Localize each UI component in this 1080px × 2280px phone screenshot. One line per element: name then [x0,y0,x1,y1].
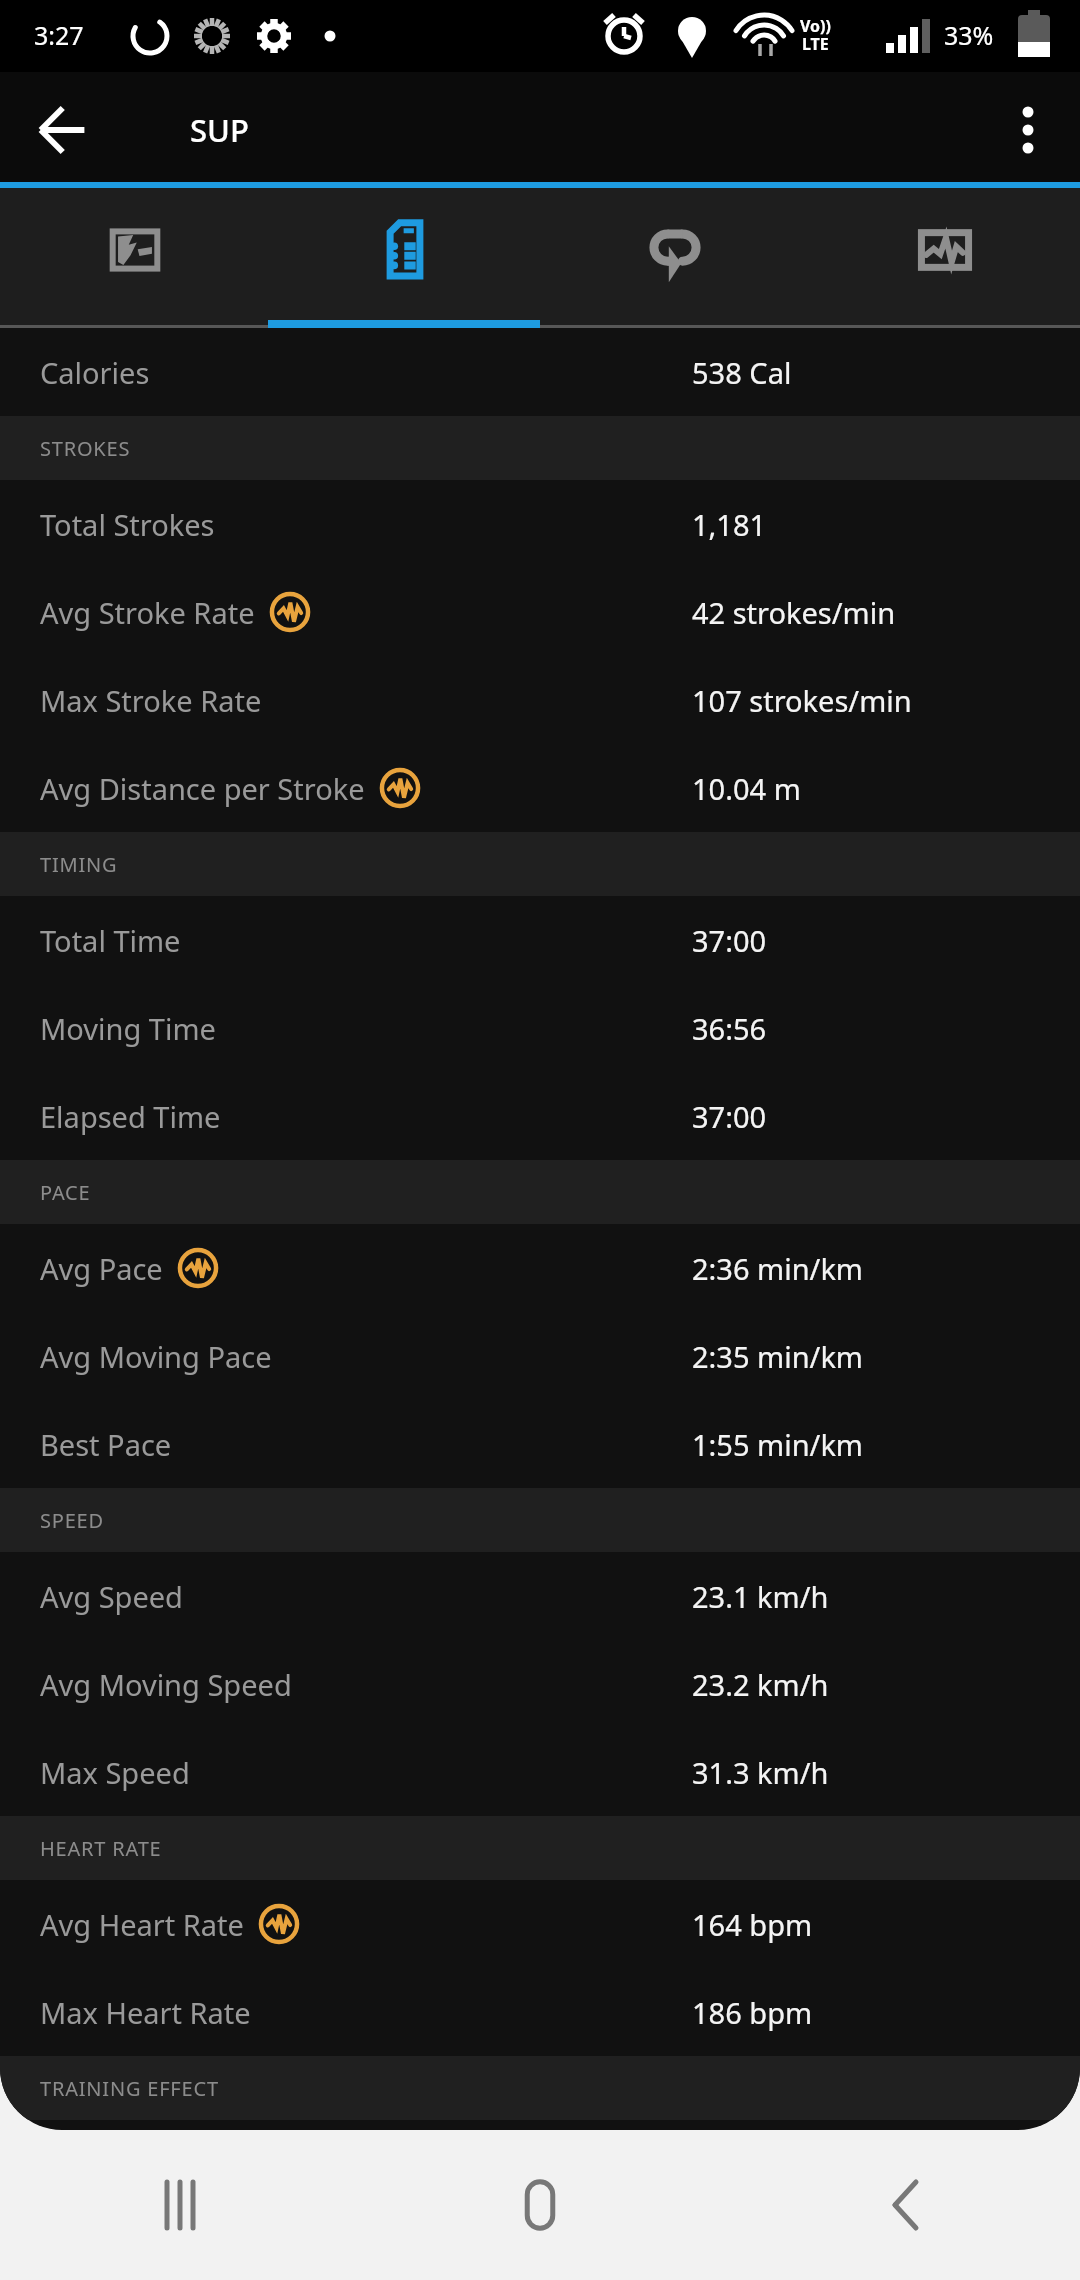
staticText: TRAINING EFFECT [40,2075,219,2102]
staticText: Avg Moving Speed [40,1665,292,1704]
button[interactable]: More options [990,92,1066,168]
staticText: Avg Stroke Rate [40,593,255,632]
staticText: 10.04 m [692,769,801,808]
staticText: 1,181 [692,505,767,544]
button[interactable]: Max Heart Rate [0,1968,1080,2056]
button[interactable]: Elapsed Time [0,1072,1080,1160]
staticText: 1:55 min/km [692,1425,863,1464]
button[interactable]: Moving Time [0,984,1080,1072]
staticText: LTE [802,33,829,55]
staticText: Vo)) [800,15,831,37]
button[interactable]: Avg Heart Rate [0,1880,1080,1968]
button[interactable]: Total Time [0,896,1080,984]
staticText: Avg Pace [40,1249,163,1288]
staticText: PACE [40,1179,91,1206]
button[interactable]: Back [720,2130,1080,2280]
button[interactable]: Home [360,2130,720,2280]
staticText: HEART RATE [40,1835,162,1862]
button[interactable]: Best Pace [0,1400,1080,1488]
staticText: Max Speed [40,1753,190,1792]
button[interactable]: Avg Stroke Rate [0,568,1080,656]
staticText: Best Pace [40,1425,172,1464]
button[interactable]: Avg Speed [0,1552,1080,1640]
staticText: Avg Speed [40,1577,183,1616]
staticText: 23.2 km/h [692,1665,829,1704]
staticText: 37:00 [692,1097,767,1136]
button[interactable]: Details [270,188,540,328]
staticText: Max Heart Rate [40,1993,251,2032]
button[interactable]: Back [22,91,100,169]
button[interactable]: Laps [540,188,810,328]
button[interactable]: Avg Pace [0,1224,1080,1312]
button[interactable]: Avg Distance per Stroke [0,744,1080,832]
staticText: Avg Moving Pace [40,1337,272,1376]
staticText: Moving Time [40,1009,216,1048]
staticText: STROKES [40,435,131,462]
staticText: 42 strokes/min [692,593,896,632]
staticText: 36:56 [692,1009,767,1048]
staticText: 31.3 km/h [692,1753,829,1792]
staticText: 164 bpm [692,1905,813,1944]
staticText: 538 Cal [692,353,792,392]
button[interactable]: Calories [0,328,1080,416]
staticText: Total Time [40,921,181,960]
button[interactable]: Max Stroke Rate [0,656,1080,744]
staticText: 37:00 [692,921,767,960]
staticText: Avg Heart Rate [40,1905,244,1944]
staticText: Avg Distance per Stroke [40,769,365,808]
staticText: 186 bpm [692,1993,813,2032]
staticText: 23.1 km/h [692,1577,829,1616]
button[interactable]: Avg Moving Speed [0,1640,1080,1728]
button[interactable]: Charts [810,188,1080,328]
staticText: Calories [40,353,150,392]
staticText: 2:35 min/km [692,1337,863,1376]
button[interactable]: Avg Moving Pace [0,1312,1080,1400]
staticText: SPEED [40,1507,104,1534]
staticText: Elapsed Time [40,1097,221,1136]
staticText: 3:27 [34,18,84,52]
button[interactable]: Total Strokes [0,480,1080,568]
staticText: 2:36 min/km [692,1249,863,1288]
staticText: Total Strokes [40,505,215,544]
button[interactable]: Recent apps [0,2130,360,2280]
staticText: 33% [944,18,994,52]
button[interactable]: Map [0,188,270,328]
staticText: Max Stroke Rate [40,681,262,720]
staticText: SUP [190,109,249,151]
staticText: TIMING [40,851,118,878]
button[interactable]: Max Speed [0,1728,1080,1816]
staticText: 107 strokes/min [692,681,912,720]
